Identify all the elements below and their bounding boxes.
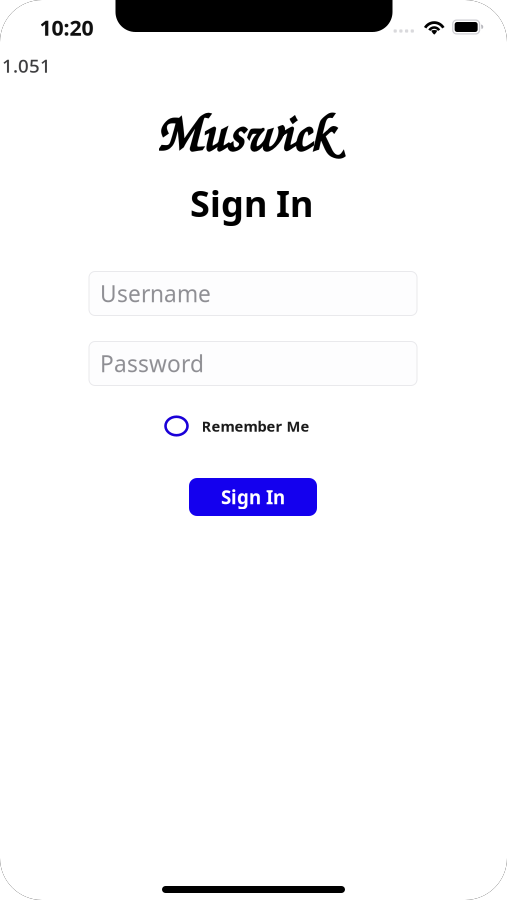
button[interactable]: Username: [89, 271, 417, 315]
staticText: Password: [100, 348, 204, 378]
button[interactable]: Sign In: [189, 478, 317, 516]
staticText: Sign In: [221, 485, 285, 509]
staticText: 10:20: [39, 13, 93, 42]
button[interactable]: Password: [89, 341, 417, 385]
staticText: 1.051: [2, 53, 51, 78]
staticText: Sign In: [190, 179, 313, 227]
staticText: Remember Me: [201, 416, 309, 436]
staticText: Username: [100, 278, 211, 308]
button[interactable]: Remember Me: [165, 414, 309, 438]
staticText: Muswick: [155, 96, 331, 166]
